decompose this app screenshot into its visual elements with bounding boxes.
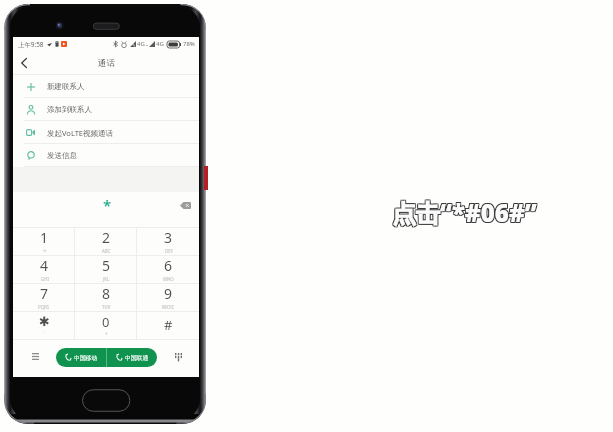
staticText: 0: [102, 313, 110, 331]
button[interactable]: 4: [13, 256, 75, 283]
button[interactable]: 9: [137, 284, 199, 311]
button[interactable]: 发起VoLTE视频通话: [13, 121, 199, 144]
button[interactable]: 0: [75, 312, 137, 339]
staticText: PQRS: [38, 304, 50, 310]
staticText: #: [164, 316, 173, 334]
button[interactable]: 7: [13, 284, 75, 311]
staticText: DEF: [165, 248, 173, 254]
staticText: 点击“*#06#”: [393, 197, 538, 230]
staticText: 点击“*#06#”: [393, 195, 538, 228]
staticText: TUV: [102, 304, 111, 310]
staticText: 3: [164, 228, 173, 247]
staticText: 点击“*#06#”: [392, 197, 537, 230]
staticText: 点击“*#06#”: [392, 196, 537, 229]
button[interactable]: 菜单: [27, 348, 43, 364]
staticText: 78%: [183, 40, 195, 48]
staticText: MNO: [163, 276, 174, 282]
button[interactable]: 5: [75, 256, 137, 283]
staticText: ∞: [43, 248, 47, 253]
button[interactable]: 6: [137, 256, 199, 283]
button[interactable]: 删除: [177, 198, 193, 212]
staticText: 4G: [137, 40, 145, 48]
staticText: +: [105, 331, 108, 337]
button[interactable]: 中国联通: [107, 348, 157, 367]
button[interactable]: ✱: [13, 312, 75, 339]
staticText: 通话: [98, 58, 115, 69]
staticText: 点击“*#06#”: [391, 196, 536, 229]
staticText: 发起VoLTE视频通话: [47, 128, 114, 138]
button[interactable]: 新建联系人: [13, 75, 199, 98]
staticText: 5: [102, 256, 111, 275]
button[interactable]: 8: [75, 284, 137, 311]
staticText: ABC: [102, 248, 111, 254]
staticText: 发送信息: [47, 151, 77, 160]
staticText: 1: [40, 228, 49, 247]
button[interactable]: 1: [13, 228, 75, 255]
staticText: ·: [44, 329, 46, 335]
staticText: 2: [102, 228, 111, 247]
staticText: 中国联通: [125, 354, 149, 361]
staticText: 4G: [156, 40, 164, 48]
staticText: 点击“*#06#”: [393, 196, 538, 229]
staticText: 6: [164, 256, 173, 275]
staticText: *: [103, 195, 112, 215]
staticText: 点击“*#06#”: [392, 195, 537, 228]
staticText: 7: [40, 284, 49, 303]
button[interactable]: 添加到联系人: [13, 98, 199, 121]
staticText: WXYZ: [162, 304, 174, 310]
button[interactable]: 2: [75, 228, 137, 255]
staticText: 点击“*#06#”: [391, 195, 536, 228]
staticText: JKL: [103, 276, 110, 282]
staticText: 8: [102, 284, 111, 303]
staticText: 添加到联系人: [47, 105, 92, 114]
button[interactable]: #: [137, 312, 199, 339]
staticText: 上午9:58: [18, 40, 44, 49]
button[interactable]: 3: [137, 228, 199, 255]
staticText: 9: [164, 284, 173, 303]
staticText: 新建联系人: [47, 82, 85, 91]
staticText: 中国移动: [74, 354, 98, 361]
button[interactable]: 收起键盘: [170, 349, 186, 365]
staticText: GHI: [41, 276, 49, 282]
button[interactable]: 发送信息: [13, 144, 199, 167]
staticText: ✱: [39, 314, 50, 329]
button[interactable]: 返回: [14, 53, 34, 73]
staticText: 点击“*#06#”: [391, 197, 536, 230]
button[interactable]: 中国移动: [56, 348, 106, 367]
staticText: 4: [40, 256, 49, 275]
